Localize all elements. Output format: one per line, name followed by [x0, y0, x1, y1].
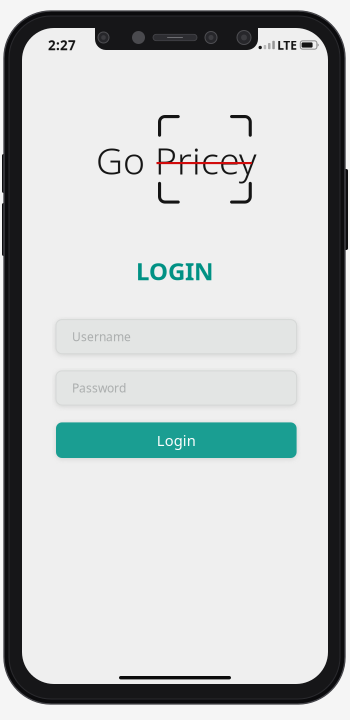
staticText: Username	[72, 329, 131, 345]
staticText: Go Pricey	[96, 135, 257, 185]
staticText: 2:27	[48, 36, 76, 54]
staticText: LTE	[277, 37, 297, 53]
button[interactable]: Login	[56, 422, 297, 458]
staticText: Login	[157, 430, 196, 450]
button[interactable]: Password	[56, 371, 297, 405]
staticText: LOGIN	[136, 255, 214, 287]
button[interactable]: Username	[56, 320, 297, 354]
staticText: Password	[72, 380, 126, 396]
